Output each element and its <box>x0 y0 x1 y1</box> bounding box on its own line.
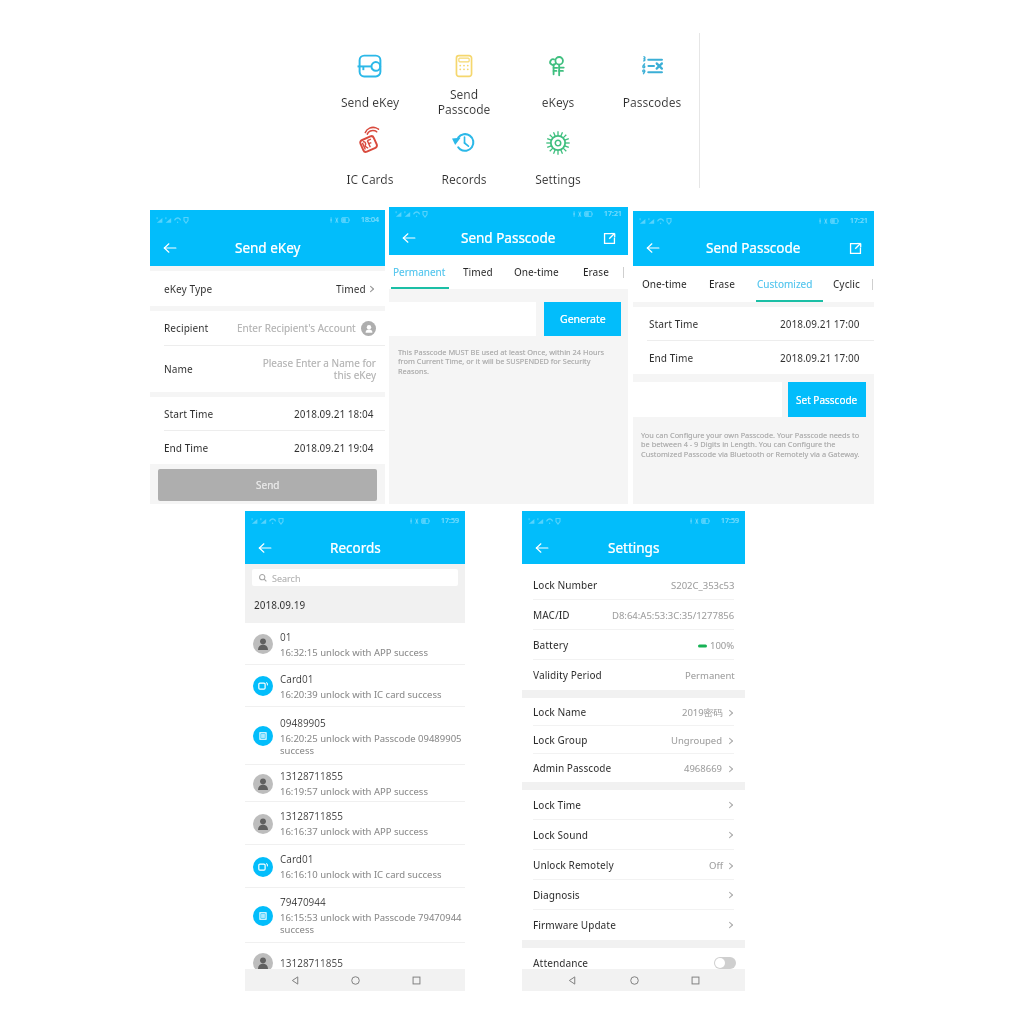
button[interactable]: Lock Time <box>522 790 745 820</box>
button[interactable]: Erase <box>568 255 623 289</box>
button[interactable]: End Time <box>150 431 385 464</box>
button[interactable]: Start Time <box>633 307 874 340</box>
staticText: Unlock Remotely <box>533 858 614 872</box>
button[interactable]: Search <box>252 569 458 586</box>
button[interactable]: Lock Name <box>522 698 745 726</box>
staticText: 16:15:53 unlock with Passcode 79470944 s… <box>280 911 464 936</box>
staticText: Erase <box>583 265 609 279</box>
staticText: Records <box>330 539 381 557</box>
button[interactable]: Generate <box>544 302 621 336</box>
staticText: eKey Type <box>164 282 213 296</box>
staticText: Card01 <box>280 852 314 866</box>
staticText: Permanent <box>685 669 735 682</box>
button[interactable]: One-time <box>633 266 695 302</box>
button[interactable]: Set Passcode <box>788 382 866 417</box>
button[interactable]: 01 <box>245 623 465 665</box>
button[interactable]: eKeys <box>512 46 604 113</box>
button[interactable]: 79470944 <box>245 888 465 943</box>
button[interactable]: eKey Type <box>150 271 385 306</box>
staticText: Permanent <box>393 265 446 279</box>
button[interactable]: Passcodes <box>606 46 698 113</box>
button[interactable]: One-time <box>505 255 568 289</box>
staticText: 01 <box>280 630 292 644</box>
button[interactable]: Share <box>598 227 620 249</box>
button[interactable]: Unlock Remotely <box>522 850 745 880</box>
button[interactable]: Records <box>418 123 510 190</box>
staticText: 100% <box>710 639 735 652</box>
button[interactable]: Share <box>844 237 866 259</box>
staticText: Off <box>709 859 723 872</box>
button[interactable]: End Time <box>633 341 874 374</box>
staticText: 4968669 <box>684 762 723 775</box>
button[interactable]: Diagnosis <box>522 880 745 910</box>
staticText: Lock Time <box>533 798 582 812</box>
button[interactable]: Send <box>158 469 377 501</box>
button[interactable]: 13128711855 <box>245 765 465 802</box>
staticText: Passcodes <box>606 94 698 110</box>
button[interactable]: Attendance <box>522 948 745 978</box>
staticText: 2018.09.19 <box>254 598 306 612</box>
staticText: Cyclic <box>833 277 860 291</box>
button[interactable]: Back <box>158 236 182 260</box>
staticText: Enter Recipient's Account <box>237 321 356 335</box>
button[interactable]: Timed <box>450 255 505 289</box>
staticText: 2019密码 <box>682 706 723 719</box>
staticText: Lock Name <box>533 705 587 719</box>
button[interactable]: Back <box>253 536 277 560</box>
button[interactable]: Back <box>561 969 583 991</box>
button[interactable]: Card01 <box>245 845 465 888</box>
button[interactable]: Cyclic <box>821 266 872 302</box>
staticText: 16:16:10 unlock with IC card success <box>280 868 442 881</box>
button[interactable]: Back <box>641 236 665 260</box>
button[interactable]: Customized <box>749 266 821 302</box>
staticText: Admin Passcode <box>533 761 612 775</box>
staticText: 2018.09.21 17:00 <box>780 317 860 331</box>
button[interactable]: Recents <box>684 969 706 991</box>
button[interactable]: IC Cards <box>324 123 416 190</box>
button[interactable]: MAC/ID <box>522 600 745 630</box>
button[interactable]: Lock Number <box>522 570 745 600</box>
button[interactable]: Home <box>623 969 645 991</box>
button[interactable]: Permanent <box>389 255 450 289</box>
button[interactable]: Home <box>344 969 366 991</box>
button[interactable]: Lock Group <box>522 726 745 754</box>
button[interactable]: Back <box>284 969 306 991</box>
button[interactable]: Erase <box>695 266 749 302</box>
staticText: Records <box>418 171 510 187</box>
staticText: Set Passcode <box>796 393 858 407</box>
button[interactable]: Back <box>397 226 421 250</box>
button[interactable]: Start Time <box>150 397 385 430</box>
button[interactable]: Admin Passcode <box>522 754 745 782</box>
button[interactable]: Name <box>150 346 385 392</box>
staticText: Battery <box>533 638 569 652</box>
staticText: Timed <box>336 282 366 296</box>
button[interactable]: Send Passcode <box>418 46 510 123</box>
button[interactable]: Send eKey <box>324 46 416 113</box>
button[interactable]: Card01 <box>245 665 465 707</box>
staticText: Erase <box>709 277 735 291</box>
staticText: One-time <box>514 265 559 279</box>
staticText: Send Passcode <box>706 239 801 257</box>
staticText: 16:32:15 unlock with APP success <box>280 646 428 659</box>
staticText: 16:20:39 unlock with IC card success <box>280 688 442 701</box>
staticText: Settings <box>512 171 604 187</box>
staticText: You can Configure your own Passcode. You… <box>641 430 866 460</box>
button[interactable]: 13128711855 <box>245 802 465 845</box>
staticText: Lock Number <box>533 578 598 592</box>
button[interactable]: Recipient <box>150 311 385 345</box>
button[interactable]: Toggle Attendance <box>714 957 736 969</box>
button[interactable]: Lock Sound <box>522 820 745 850</box>
button[interactable]: Settings <box>512 123 604 190</box>
staticText: Start Time <box>649 317 699 331</box>
button[interactable]: Validity Period <box>522 660 745 690</box>
button[interactable]: Back <box>530 536 554 560</box>
staticText: End Time <box>164 441 209 455</box>
staticText: Lock Sound <box>533 828 588 842</box>
button[interactable]: Recents <box>405 969 427 991</box>
staticText: Send Passcode <box>418 86 510 117</box>
button[interactable]: Battery <box>522 630 745 660</box>
button[interactable]: 09489905 <box>245 707 465 765</box>
staticText: Recipient <box>164 321 209 335</box>
button[interactable]: 13128711855 <box>245 943 465 983</box>
button[interactable]: Firmware Update <box>522 910 745 940</box>
